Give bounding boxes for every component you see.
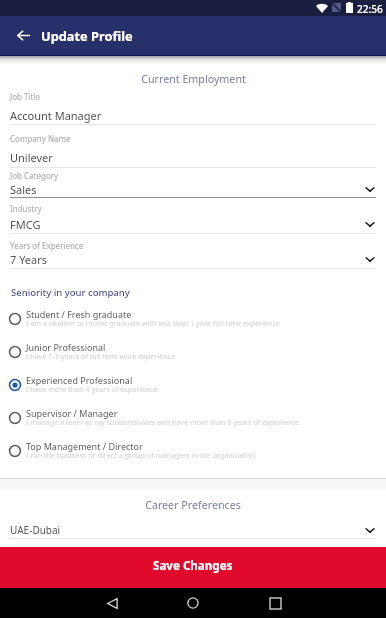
staticText: Job Title xyxy=(10,91,40,102)
staticText: I manage a team as my subbordinates and … xyxy=(26,417,299,427)
button[interactable]: Supervisor / Manager xyxy=(0,401,386,433)
staticText: 7 Years xyxy=(10,252,364,267)
button[interactable]: Student / Fresh graduate xyxy=(0,302,386,334)
button[interactable]: Save Changes xyxy=(0,547,386,588)
staticText: FMCG xyxy=(10,217,364,232)
staticText: Top Management / Director xyxy=(26,440,143,452)
staticText: Seniority in your company xyxy=(11,286,130,299)
staticText: Industry xyxy=(10,203,42,214)
staticText: Junior Professional xyxy=(26,341,106,353)
button[interactable]: Back xyxy=(5,16,41,55)
staticText: UAE-Dubai xyxy=(10,523,364,537)
staticText: Account Manager xyxy=(10,108,376,123)
button[interactable]: Experienced Professional xyxy=(0,368,386,400)
staticText: 22:56 xyxy=(357,2,383,16)
staticText: I have 1-3 years of full-time work exper… xyxy=(26,351,176,361)
button[interactable]: Recent apps xyxy=(255,588,295,618)
button[interactable]: Industry xyxy=(10,195,376,235)
button[interactable]: UAE-Dubai xyxy=(10,513,376,540)
staticText: Current Employment xyxy=(141,72,246,86)
button[interactable]: Years of Experience xyxy=(10,232,376,270)
staticText: Save Changes xyxy=(153,558,233,574)
button[interactable]: Home xyxy=(173,588,213,618)
button[interactable]: Company Name xyxy=(10,125,376,169)
button[interactable]: Job Category xyxy=(10,162,376,199)
staticText: Company Name xyxy=(10,133,71,144)
button[interactable]: Top Management / Director xyxy=(0,434,386,466)
button[interactable]: Job Title xyxy=(10,83,376,126)
staticText: Supervisor / Manager xyxy=(26,407,118,419)
button[interactable]: Back xyxy=(92,588,132,618)
staticText: Experienced Professional xyxy=(26,374,133,386)
staticText: Update Profile xyxy=(41,27,133,44)
button[interactable]: Junior Professional xyxy=(0,335,386,367)
staticText: I run the business or direct a group of … xyxy=(26,450,256,460)
staticText: Unilever xyxy=(10,150,376,165)
staticText: Sales xyxy=(10,182,364,197)
staticText: Student / Fresh graduate xyxy=(26,308,132,320)
staticText: Years of Experience xyxy=(10,240,84,251)
staticText: I have more than 4 years of experience xyxy=(26,384,158,394)
staticText: Career Preferences xyxy=(145,498,241,512)
staticText: I am a student or recent graduate with l… xyxy=(26,318,280,328)
staticText: Job Category xyxy=(10,170,59,181)
